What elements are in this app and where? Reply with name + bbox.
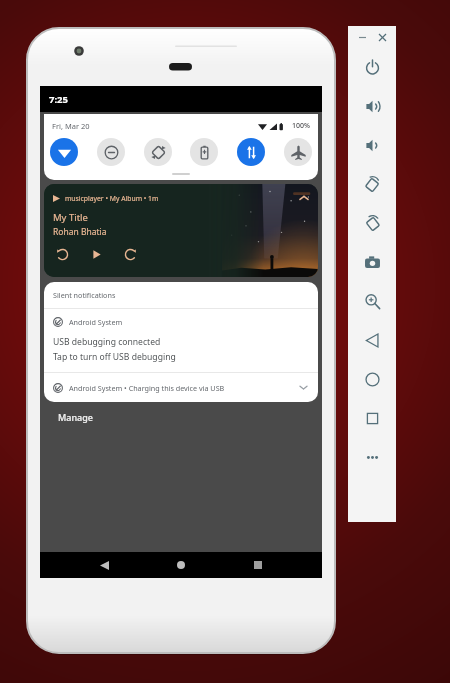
button[interactable]: Minimize (355, 30, 369, 44)
button[interactable]: Android System (44, 309, 318, 372)
button[interactable]: Manage (54, 408, 97, 426)
button[interactable]: Close (375, 30, 389, 44)
staticText: Android System • Charging this device vi… (69, 383, 225, 393)
button[interactable]: Home (348, 360, 396, 399)
staticText: Rohan Bhatia (53, 226, 107, 238)
button[interactable]: Recent apps (245, 552, 271, 578)
button[interactable]: Volume down (348, 126, 396, 165)
button[interactable]: Collapse (298, 192, 310, 204)
button[interactable]: Battery Saver (190, 138, 218, 166)
staticText: My Title (53, 211, 88, 224)
button[interactable]: Power (348, 48, 396, 87)
staticText: 7:25 (49, 93, 68, 106)
button[interactable]: Back (348, 321, 396, 360)
button[interactable]: Expand (298, 382, 309, 393)
button[interactable]: Auto-rotate (144, 138, 172, 166)
staticText: Tap to turn off USB debugging (53, 351, 176, 363)
button[interactable]: Fast forward (121, 245, 139, 263)
staticText: Silent notifications (53, 290, 116, 300)
staticText: Manage (58, 411, 93, 423)
button[interactable]: Overview (348, 399, 396, 438)
button[interactable]: Wi-Fi (50, 138, 78, 166)
staticText: USB debugging connected (53, 336, 161, 348)
button[interactable]: musicplayer • My Album • 1m (44, 184, 318, 277)
button[interactable]: Rewind (53, 245, 71, 263)
button[interactable]: Rotate right (348, 204, 396, 243)
button[interactable]: Play (87, 245, 105, 263)
staticText: Fri, Mar 20 (52, 121, 90, 131)
button[interactable]: Silent notifications (44, 282, 318, 308)
button[interactable]: More (348, 438, 396, 477)
button[interactable]: Rotate left (348, 165, 396, 204)
button[interactable]: Do Not Disturb (97, 138, 125, 166)
button[interactable]: Home (168, 552, 194, 578)
button[interactable]: Take screenshot (348, 243, 396, 282)
button[interactable]: Airplane mode (284, 138, 312, 166)
button[interactable]: Mobile data (237, 138, 265, 166)
button[interactable]: Back (91, 552, 117, 578)
button[interactable]: Android System • Charging this device vi… (44, 373, 318, 402)
button[interactable]: Zoom (348, 282, 396, 321)
button[interactable]: Volume up (348, 87, 396, 126)
staticText: Android System (69, 317, 123, 327)
staticText: musicplayer • My Album • 1m (65, 194, 159, 203)
staticText: 100% (292, 121, 310, 131)
